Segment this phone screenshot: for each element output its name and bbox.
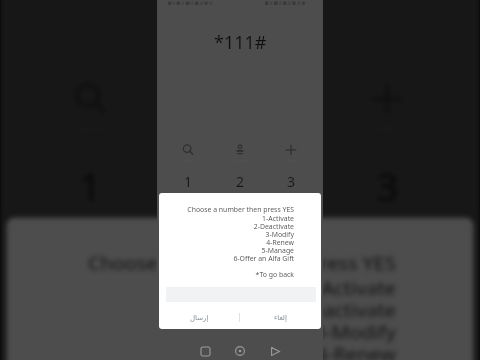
button[interactable]: 1	[162, 172, 214, 190]
button[interactable]: 1	[15, 160, 165, 209]
staticText: 2	[228, 160, 254, 209]
button[interactable]: إرسال	[159, 306, 239, 329]
staticText: *111#	[214, 30, 267, 52]
button[interactable]: 2	[165, 160, 315, 209]
button[interactable]: Back	[263, 339, 287, 360]
staticText: 1	[184, 172, 193, 190]
button[interactable]: Add	[312, 80, 462, 135]
button[interactable]: Recents	[193, 339, 217, 360]
staticText: Choose a number then press YES 1-Activat…	[159, 205, 294, 279]
staticText: إلغاء	[274, 314, 287, 322]
button[interactable]: 3	[312, 160, 462, 209]
button[interactable]: Search	[15, 80, 165, 135]
staticText: 2	[236, 172, 245, 190]
button[interactable]: 2	[214, 172, 266, 190]
button[interactable]: 3	[265, 172, 317, 190]
staticText: إرسال	[190, 314, 209, 322]
button[interactable]: Search	[162, 143, 214, 163]
staticText: Choose a number then press YES 1-Activat…	[6, 250, 396, 360]
button[interactable]: Home	[228, 339, 252, 360]
button[interactable]: إلغاء	[240, 306, 321, 329]
button[interactable]: Add	[265, 143, 317, 163]
button[interactable]: Contacts	[214, 143, 266, 163]
staticText: 3	[287, 172, 296, 190]
